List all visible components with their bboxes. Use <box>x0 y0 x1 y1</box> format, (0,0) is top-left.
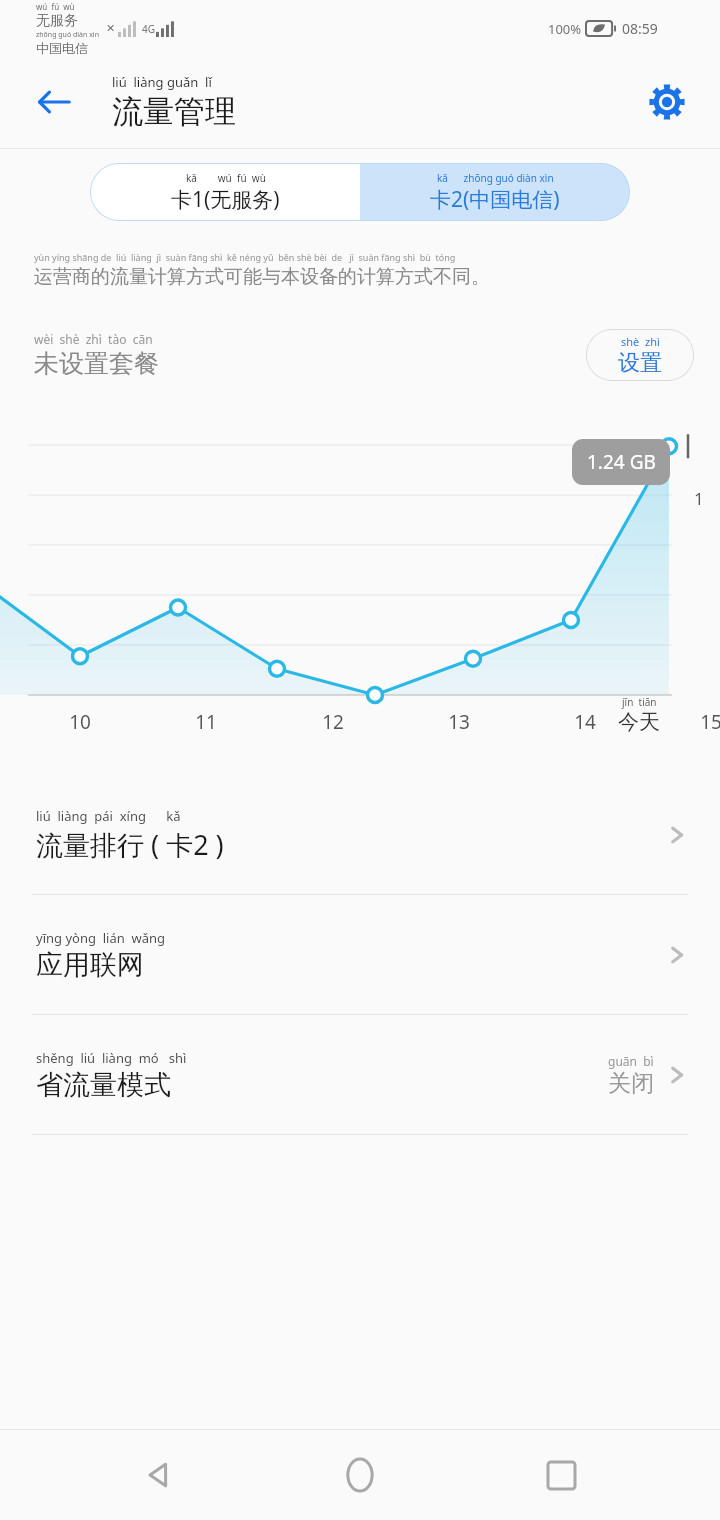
staticText: 卡2(中国电信) <box>430 185 560 214</box>
staticText: 100% <box>548 20 582 38</box>
staticText: 设置 <box>618 349 662 377</box>
staticText: 11 <box>192 709 220 735</box>
staticText: 1 <box>694 487 704 510</box>
button[interactable]: kǎ zhōng guó diàn xìn <box>360 163 630 221</box>
staticText: 卡1(无服务) <box>171 185 280 214</box>
staticText: liú liàng pái xíng kǎ <box>36 807 181 825</box>
staticText: shè zhì <box>621 334 660 349</box>
staticText: jīn tiān <box>622 695 657 709</box>
staticText: 无服务 <box>36 12 78 30</box>
button[interactable]: kǎ wú fú wù <box>90 163 360 221</box>
staticText: shěng liú liàng mó shì <box>36 1049 187 1067</box>
button[interactable]: liú liàng pái xíng kǎ <box>0 775 720 895</box>
staticText: 关闭 <box>608 1069 654 1098</box>
staticText: kǎ zhōng guó diàn xìn <box>437 171 554 185</box>
staticText: 10 <box>66 709 94 735</box>
button[interactable]: yīng yòng lián wǎng <box>0 895 720 1015</box>
staticText: 15 <box>697 709 720 735</box>
button[interactable]: shè zhì <box>586 329 694 381</box>
staticText: liú liàng guǎn lǐ <box>112 73 212 91</box>
staticText: 流量排行 ( 卡2 ) <box>36 826 224 863</box>
staticText: zhōng guó diàn xìn <box>36 30 100 40</box>
staticText: guān bì <box>608 1053 654 1069</box>
staticText: 13 <box>445 709 473 735</box>
staticText: 未设置套餐 <box>34 348 159 379</box>
button[interactable]: Settings <box>636 71 698 133</box>
staticText: 4G <box>142 22 155 36</box>
button[interactable]: Back <box>22 70 86 134</box>
button[interactable]: Recent apps <box>519 1433 603 1517</box>
staticText: 中国电信 <box>36 40 88 56</box>
staticText: 流量管理 <box>112 92 236 131</box>
staticText: yīng yòng lián wǎng <box>36 929 166 947</box>
staticText: kǎ wú fú wù <box>186 171 266 185</box>
button[interactable]: Home <box>318 1433 402 1517</box>
staticText: 14 <box>571 709 599 735</box>
staticText: 1.24 GB <box>587 449 656 475</box>
staticText: 08:59 <box>622 19 658 38</box>
staticText: wèi shè zhì tào cān <box>34 331 153 347</box>
staticText: 应用联网 <box>36 948 144 982</box>
button[interactable]: shěng liú liàng mó shì <box>0 1015 720 1135</box>
staticText: 12 <box>319 709 347 735</box>
button[interactable]: Back <box>117 1433 201 1517</box>
staticText: wú fú wù <box>36 1 75 12</box>
staticText: ✕ <box>106 22 116 35</box>
staticText: 运营商的流量计算方式可能与本设备的计算方式不同。 <box>34 265 490 289</box>
staticText: yùn yíng shāng de liú liàng jì suàn fāng… <box>34 251 456 263</box>
staticText: 今天 <box>618 709 660 735</box>
staticText: 省流量模式 <box>36 1068 171 1102</box>
